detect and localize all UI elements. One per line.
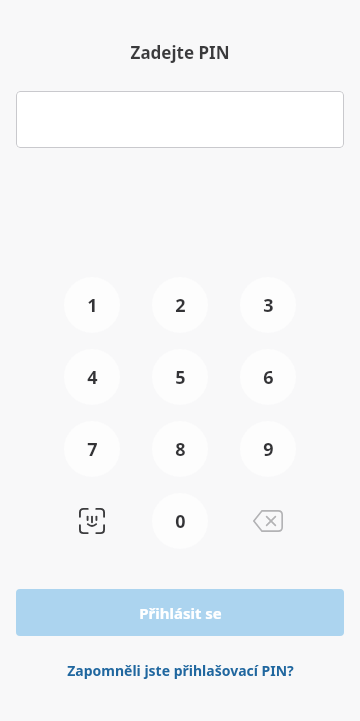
staticText: 4 xyxy=(87,365,98,390)
staticText: 0 xyxy=(175,509,186,534)
button[interactable]: 6 xyxy=(240,349,296,405)
button[interactable]: Backspace xyxy=(240,493,296,549)
button[interactable]: Přihlásit se xyxy=(16,589,344,636)
button[interactable]: 3 xyxy=(240,277,296,333)
staticText: Zapomněli jste přihlašovací PIN? xyxy=(67,661,294,680)
staticText: 7 xyxy=(87,437,98,462)
staticText: 9 xyxy=(263,437,274,462)
button[interactable]: 8 xyxy=(152,421,208,477)
button[interactable]: 0 xyxy=(152,493,208,549)
staticText: 2 xyxy=(175,293,186,318)
button[interactable]: Zapomněli jste přihlašovací PIN? xyxy=(0,655,360,685)
staticText: 1 xyxy=(87,293,98,318)
staticText: 3 xyxy=(263,293,274,318)
button[interactable]: 1 xyxy=(64,277,120,333)
staticText: 5 xyxy=(175,365,186,390)
staticText: 8 xyxy=(175,437,186,462)
button[interactable]: 5 xyxy=(152,349,208,405)
button[interactable]: 2 xyxy=(152,277,208,333)
button[interactable]: Face unlock xyxy=(64,493,120,549)
staticText: 6 xyxy=(263,365,274,390)
button[interactable]: 7 xyxy=(64,421,120,477)
staticText: Přihlásit se xyxy=(139,603,222,623)
button[interactable]: 9 xyxy=(240,421,296,477)
button[interactable] xyxy=(16,91,344,148)
staticText: Zadejte PIN xyxy=(0,41,360,64)
button[interactable]: 4 xyxy=(64,349,120,405)
